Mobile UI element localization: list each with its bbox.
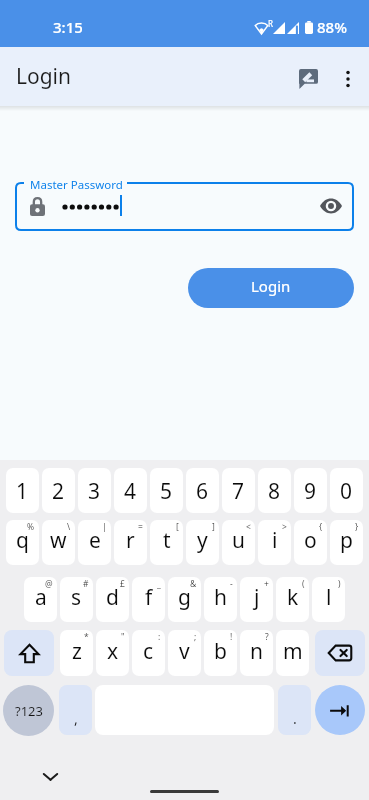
button[interactable]: x xyxy=(96,630,129,676)
button[interactable]: a xyxy=(24,577,57,622)
button[interactable]: y xyxy=(186,520,219,565)
button[interactable]: c xyxy=(132,630,165,676)
button[interactable]: i xyxy=(258,520,291,565)
staticText: l xyxy=(326,583,332,612)
staticText: # xyxy=(83,578,89,590)
staticText: . xyxy=(293,709,297,728)
staticText: ( xyxy=(302,578,305,590)
button[interactable]: ?123 xyxy=(3,685,54,736)
button[interactable]: e xyxy=(78,520,111,565)
button[interactable]: g xyxy=(168,577,201,622)
button[interactable]: w xyxy=(42,520,75,565)
staticText: u xyxy=(232,526,245,555)
staticText: 1 xyxy=(16,477,29,506)
button[interactable]: 2 xyxy=(42,468,75,513)
button[interactable]: 5 xyxy=(150,468,183,513)
staticText: _ xyxy=(157,578,161,590)
staticText: 0 xyxy=(340,477,353,506)
button[interactable]: 9 xyxy=(294,468,327,513)
button[interactable]: Backspace xyxy=(315,630,365,676)
staticText: 5 xyxy=(160,477,173,506)
staticText: ) xyxy=(338,578,341,590)
staticText: k xyxy=(287,583,299,612)
button[interactable]: r xyxy=(114,520,147,565)
button[interactable]: Period xyxy=(278,685,311,735)
button[interactable]: Comma xyxy=(59,685,92,735)
staticText: Login xyxy=(16,62,72,91)
button[interactable]: Login xyxy=(188,268,354,308)
button[interactable]: v xyxy=(168,630,201,676)
staticText: " xyxy=(121,631,125,643)
button[interactable]: f xyxy=(132,577,165,622)
staticText: 88% xyxy=(317,17,347,37)
staticText: n xyxy=(250,637,263,666)
staticText: * xyxy=(84,631,89,643)
button[interactable]: Enter xyxy=(315,685,365,735)
button[interactable]: t xyxy=(150,520,183,565)
staticText: : xyxy=(158,631,161,643)
staticText: @ xyxy=(45,578,53,590)
button[interactable]: Feedback xyxy=(288,59,328,99)
staticText: > xyxy=(282,521,287,533)
staticText: o xyxy=(304,526,317,555)
staticText: j xyxy=(254,583,260,612)
button[interactable]: k xyxy=(276,577,309,622)
staticText: c xyxy=(143,637,154,666)
staticText: d xyxy=(106,583,119,612)
staticText: s xyxy=(71,583,82,612)
staticText: p xyxy=(340,526,353,555)
staticText: } xyxy=(355,521,359,533)
staticText: = xyxy=(138,521,143,533)
button[interactable]: 0 xyxy=(330,468,363,513)
staticText: e xyxy=(89,526,101,555)
button[interactable]: 3 xyxy=(78,468,111,513)
staticText: t xyxy=(163,526,171,555)
staticText: ! xyxy=(230,631,233,643)
staticText: w xyxy=(50,526,67,555)
button[interactable]: z xyxy=(60,630,93,676)
button[interactable]: q xyxy=(6,520,39,565)
staticText: £ xyxy=(120,578,125,590)
button[interactable]: 6 xyxy=(186,468,219,513)
staticText: , xyxy=(74,709,78,728)
button[interactable]: b xyxy=(204,630,237,676)
staticText: q xyxy=(16,526,29,555)
staticText: Master Password xyxy=(30,177,123,193)
button[interactable]: 7 xyxy=(222,468,255,513)
staticText: y xyxy=(197,526,208,555)
button[interactable]: h xyxy=(204,577,237,622)
staticText: b xyxy=(214,637,227,666)
staticText: v xyxy=(179,637,190,666)
button[interactable]: n xyxy=(240,630,273,676)
button[interactable]: l xyxy=(312,577,345,622)
staticText: 4 xyxy=(124,477,137,506)
button[interactable]: p xyxy=(330,520,363,565)
staticText: < xyxy=(246,521,251,533)
staticText: ? xyxy=(265,631,269,643)
button[interactable]: s xyxy=(60,577,93,622)
button[interactable]: 4 xyxy=(114,468,147,513)
button[interactable]: u xyxy=(222,520,255,565)
staticText: 3:15 xyxy=(53,17,83,37)
staticText: 2 xyxy=(52,477,65,506)
button[interactable]: Shift xyxy=(4,630,54,676)
staticText: { xyxy=(319,521,323,533)
button[interactable]: 1 xyxy=(6,468,39,513)
staticText: & xyxy=(190,578,197,590)
staticText: i xyxy=(272,526,278,555)
button[interactable]: j xyxy=(240,577,273,622)
button[interactable]: Show password xyxy=(317,192,345,220)
staticText: Login xyxy=(251,276,291,296)
staticText: m xyxy=(283,637,303,666)
button[interactable]: o xyxy=(294,520,327,565)
staticText: ] xyxy=(212,521,215,533)
staticText: % xyxy=(27,521,35,533)
button[interactable]: Hide keyboard xyxy=(40,766,61,787)
button[interactable]: 8 xyxy=(258,468,291,513)
staticText: f xyxy=(145,583,153,612)
button[interactable]: More options xyxy=(328,59,368,99)
staticText: [ xyxy=(176,521,179,533)
button[interactable]: d xyxy=(96,577,129,622)
button[interactable]: m xyxy=(276,630,309,676)
